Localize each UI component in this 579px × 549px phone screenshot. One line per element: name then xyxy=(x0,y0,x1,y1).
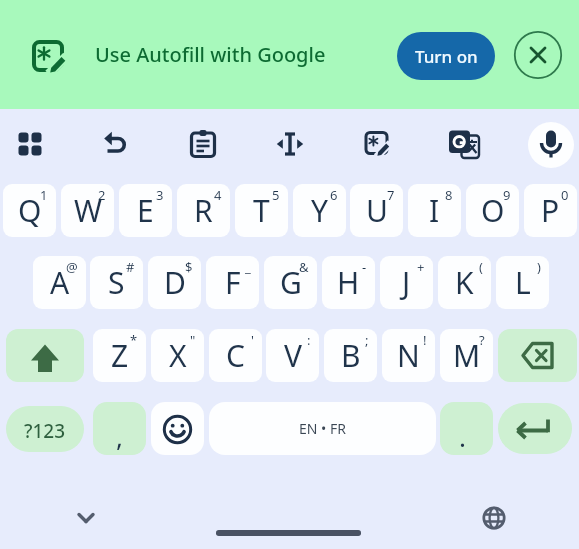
staticText: : xyxy=(307,331,311,349)
button[interactable] xyxy=(440,120,488,168)
staticText: Z xyxy=(111,335,129,376)
staticText: # xyxy=(126,258,135,276)
staticText: F xyxy=(225,262,241,303)
staticText: EN • FR xyxy=(299,419,346,438)
staticText: 4 xyxy=(214,186,222,204)
staticText: Y xyxy=(311,190,328,231)
staticText: ! xyxy=(423,331,427,349)
button[interactable]: D xyxy=(148,256,201,309)
staticText: Use Autofill with Google xyxy=(95,41,326,68)
staticText: ? xyxy=(479,331,485,349)
button[interactable]: F xyxy=(206,256,259,309)
staticText: E xyxy=(137,190,154,231)
staticText: U xyxy=(366,190,388,231)
button[interactable]: S xyxy=(90,256,143,309)
button[interactable]: X xyxy=(151,329,204,382)
button[interactable]: EN • FR xyxy=(209,402,436,455)
staticText: L xyxy=(515,262,531,303)
button[interactable] xyxy=(498,403,572,454)
staticText: K xyxy=(455,262,474,303)
staticText: 1 xyxy=(40,186,48,204)
staticText: V xyxy=(284,335,302,376)
staticText: W xyxy=(74,190,102,231)
button[interactable]: . xyxy=(440,402,493,455)
staticText: 3 xyxy=(156,186,164,204)
button[interactable] xyxy=(28,34,72,78)
button[interactable]: C xyxy=(209,329,262,382)
staticText: G xyxy=(280,262,302,303)
button[interactable] xyxy=(62,494,110,542)
staticText: ; xyxy=(365,331,369,349)
staticText: C xyxy=(226,335,245,376)
button[interactable]: P xyxy=(524,184,577,237)
staticText: S xyxy=(108,262,125,303)
button[interactable]: J xyxy=(380,256,433,309)
button[interactable]: Turn on xyxy=(397,32,495,80)
staticText: * xyxy=(130,331,138,349)
button[interactable]: N xyxy=(382,329,435,382)
staticText: @ xyxy=(66,258,78,276)
button[interactable]: I xyxy=(408,184,461,237)
staticText: 7 xyxy=(387,186,395,204)
staticText: ' xyxy=(251,331,254,349)
staticText: ) xyxy=(537,258,541,276)
button[interactable]: Z xyxy=(93,329,146,382)
button[interactable] xyxy=(6,120,54,168)
staticText: , xyxy=(116,419,123,454)
staticText: " xyxy=(190,331,196,349)
button[interactable]: H xyxy=(322,256,375,309)
button[interactable]: G xyxy=(264,256,317,309)
staticText: D xyxy=(164,262,186,303)
button[interactable]: K xyxy=(438,256,491,309)
staticText: X xyxy=(169,335,187,376)
button[interactable] xyxy=(266,120,314,168)
button[interactable] xyxy=(6,329,84,382)
staticText: 8 xyxy=(445,186,453,204)
button[interactable]: ?123 xyxy=(6,406,84,452)
button[interactable]: R xyxy=(177,184,230,237)
button[interactable]: Y xyxy=(293,184,346,237)
staticText: 2 xyxy=(98,186,106,204)
staticText: I xyxy=(429,190,440,231)
button[interactable]: A xyxy=(33,256,86,309)
staticText: Q xyxy=(18,190,42,231)
button[interactable] xyxy=(470,494,518,542)
staticText: P xyxy=(541,190,560,231)
button[interactable]: T xyxy=(235,184,288,237)
staticText: 0 xyxy=(561,186,569,204)
staticText: ( xyxy=(479,258,483,276)
button[interactable] xyxy=(527,121,575,169)
staticText: O xyxy=(481,190,505,231)
button[interactable]: B xyxy=(324,329,377,382)
button[interactable] xyxy=(513,30,563,80)
staticText: 6 xyxy=(330,186,338,204)
button[interactable]: Q xyxy=(3,184,56,237)
staticText: N xyxy=(397,335,420,376)
button[interactable] xyxy=(353,120,401,168)
staticText: A xyxy=(50,262,70,303)
staticText: J xyxy=(402,262,411,303)
staticText: . xyxy=(459,419,466,454)
button[interactable]: V xyxy=(266,329,319,382)
staticText: T xyxy=(253,190,270,231)
staticText: B xyxy=(341,335,361,376)
staticText: & xyxy=(299,258,309,276)
button[interactable]: M xyxy=(440,329,493,382)
staticText: _ xyxy=(245,258,251,276)
button[interactable]: W xyxy=(61,184,114,237)
button[interactable]: L xyxy=(496,256,549,309)
staticText: Turn on xyxy=(415,45,478,68)
button[interactable] xyxy=(151,402,204,455)
button[interactable]: E xyxy=(119,184,172,237)
staticText: + xyxy=(417,258,425,276)
staticText: - xyxy=(362,258,367,276)
button[interactable] xyxy=(179,120,227,168)
button[interactable]: , xyxy=(93,402,146,455)
button[interactable] xyxy=(93,120,141,168)
staticText: H xyxy=(337,262,360,303)
button[interactable] xyxy=(498,329,577,382)
button[interactable]: U xyxy=(350,184,403,237)
staticText: $ xyxy=(185,258,193,276)
button[interactable]: O xyxy=(466,184,519,237)
staticText: 5 xyxy=(272,186,280,204)
